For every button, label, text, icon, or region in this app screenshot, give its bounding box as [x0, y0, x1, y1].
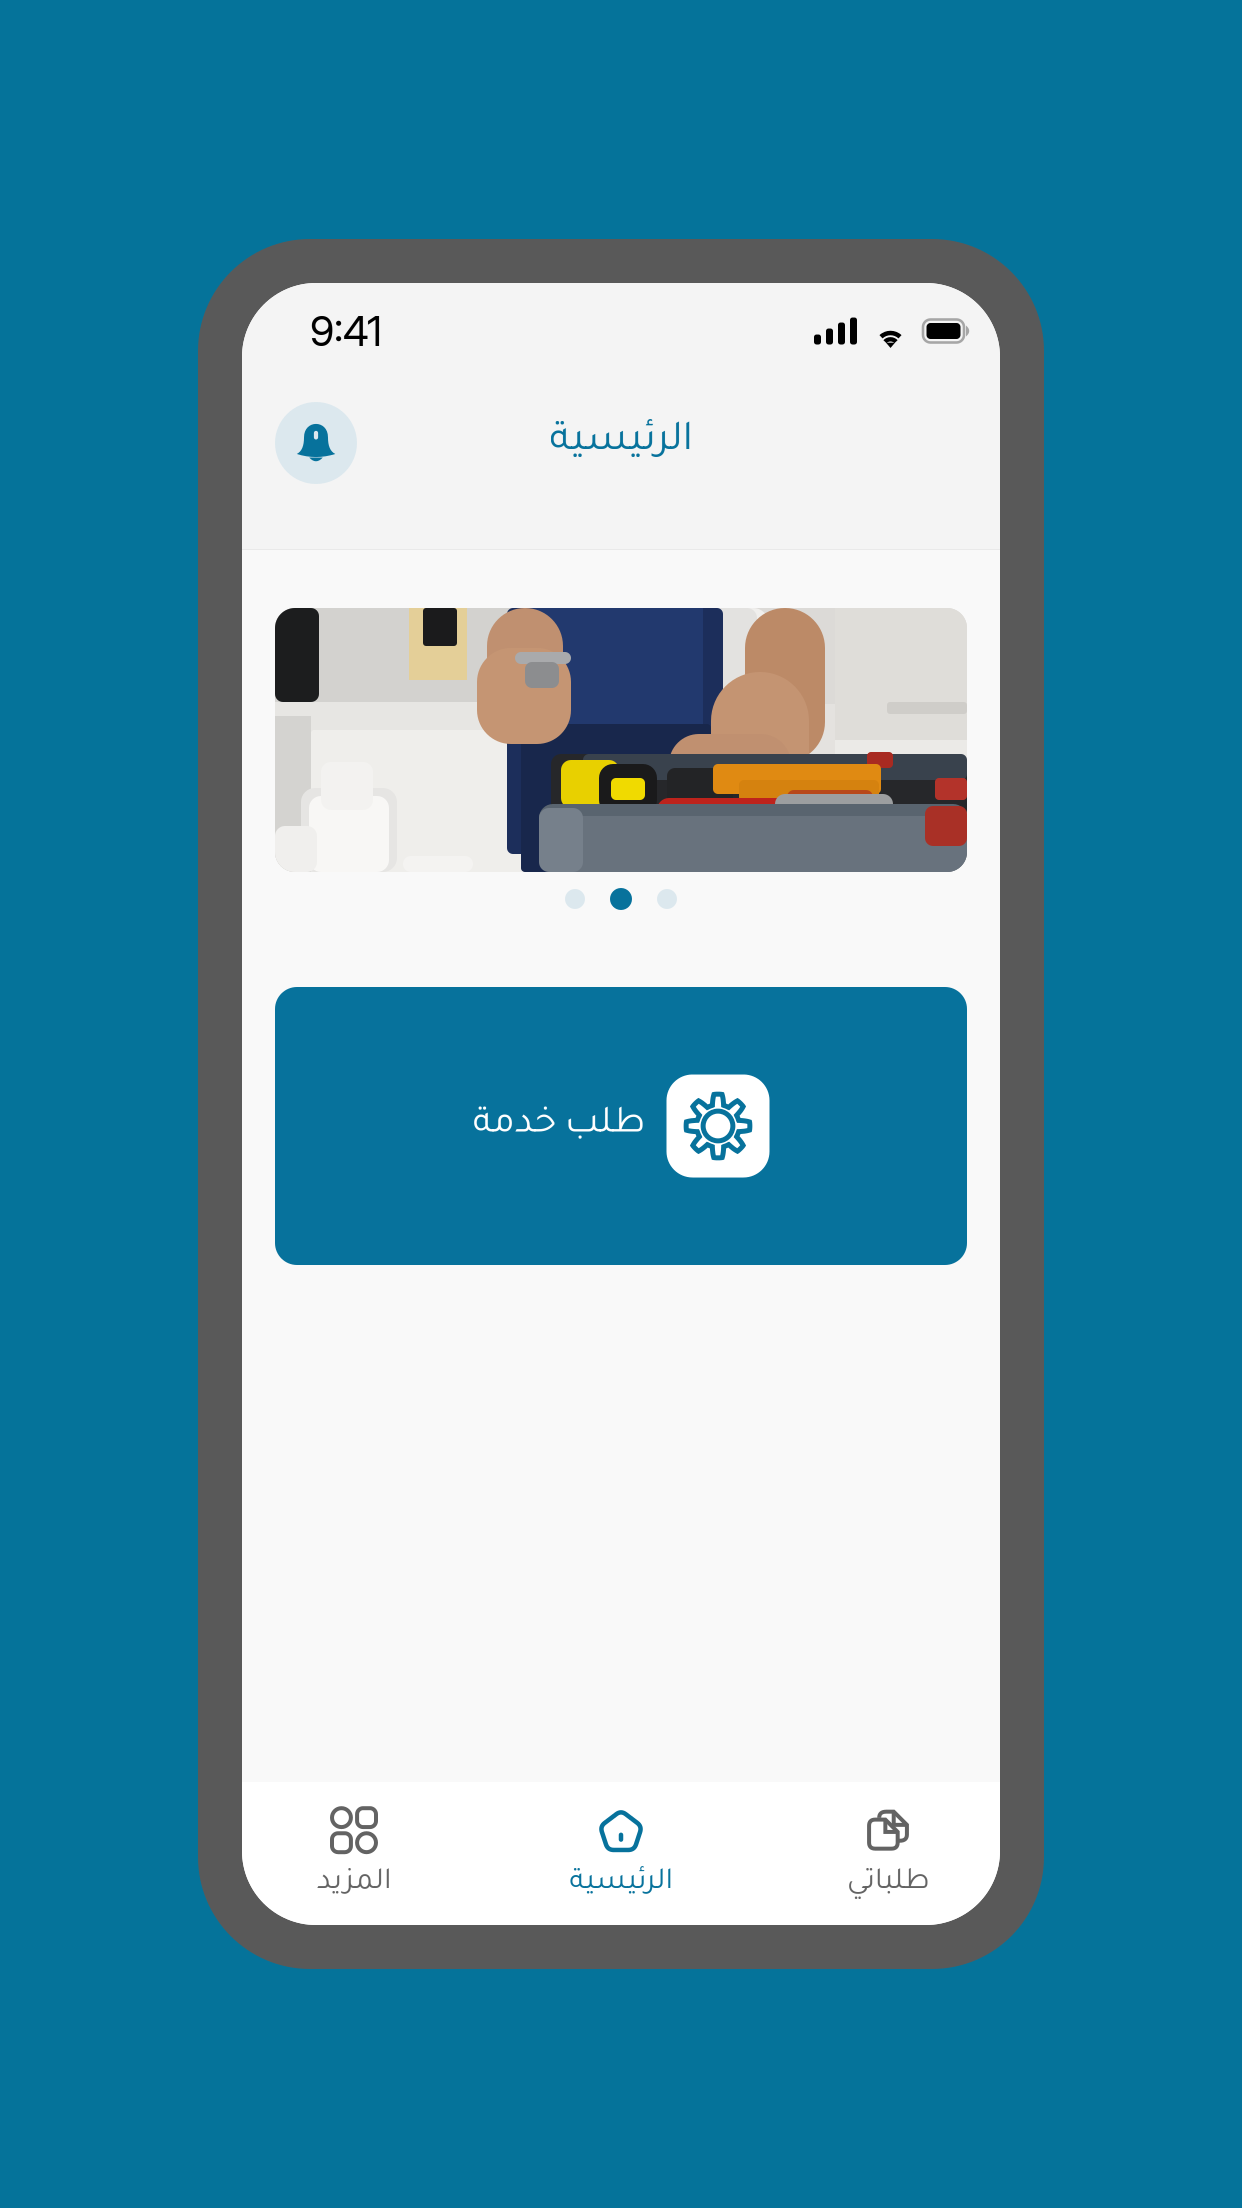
button[interactable]: طلب خدمة [275, 987, 967, 1265]
staticText: المزيد [316, 1868, 391, 1899]
staticText: طلباتي [846, 1868, 929, 1899]
staticText: الرئيسية [569, 1868, 673, 1899]
button[interactable]: المزيد [264, 1795, 444, 1911]
staticText: الرئيسية [549, 422, 693, 464]
button[interactable]: الإشعارات [275, 402, 357, 484]
staticText: 9:41 [310, 306, 382, 356]
staticText: طلب خدمة [472, 1107, 644, 1145]
button[interactable]: طلباتي [798, 1795, 978, 1911]
button[interactable]: الرئيسية [531, 1795, 711, 1911]
button[interactable]: عرض ترويجي [275, 608, 967, 872]
